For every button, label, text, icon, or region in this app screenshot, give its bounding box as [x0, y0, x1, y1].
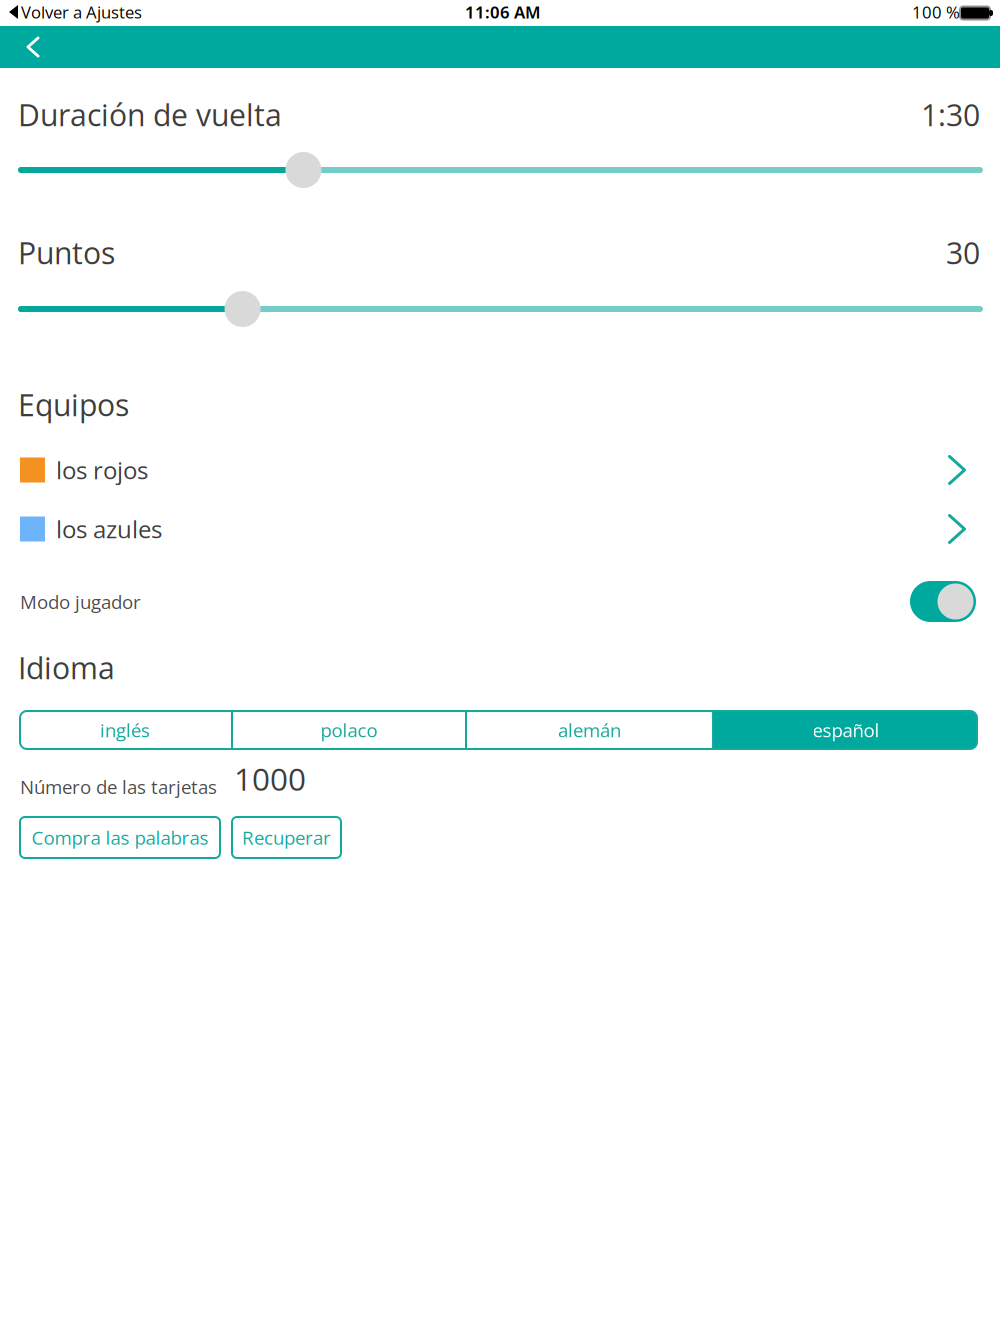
- button[interactable]: alemán: [467, 711, 712, 749]
- staticText: 1:30: [921, 94, 980, 135]
- staticText: los azules: [56, 513, 162, 545]
- button[interactable]: español: [714, 711, 978, 749]
- button[interactable]: Recuperar: [232, 817, 341, 858]
- staticText: los rojos: [56, 454, 148, 486]
- staticText: Puntos: [18, 232, 115, 273]
- button[interactable]: los azules: [0, 505, 1000, 553]
- staticText: 1000: [234, 757, 306, 800]
- staticText: 100 %: [912, 1, 960, 23]
- staticText: polaco: [320, 717, 377, 743]
- staticText: 11:06 AM: [465, 1, 541, 23]
- staticText: español: [812, 717, 879, 743]
- staticText: Compra las palabras: [31, 825, 208, 850]
- staticText: Duración de vuelta: [18, 94, 282, 135]
- staticText: inglés: [100, 717, 150, 743]
- button[interactable]: Back: [12, 22, 53, 71]
- button[interactable]: inglés: [19, 711, 231, 749]
- staticText: Número de las tarjetas: [20, 774, 217, 799]
- button[interactable]: Modo jugador: [910, 581, 976, 622]
- button[interactable]: los rojos: [0, 446, 1000, 494]
- staticText: Volver a Ajustes: [21, 1, 142, 23]
- staticText: alemán: [558, 717, 621, 743]
- staticText: Idioma: [18, 647, 115, 688]
- button[interactable]: Volver a Ajustes: [3, 0, 148, 25]
- staticText: Recuperar: [242, 825, 331, 850]
- staticText: Modo jugador: [20, 589, 141, 614]
- button[interactable]: polaco: [233, 711, 465, 749]
- button[interactable]: Compra las palabras: [20, 817, 220, 858]
- staticText: 30: [946, 232, 980, 273]
- staticText: Equipos: [18, 384, 129, 425]
